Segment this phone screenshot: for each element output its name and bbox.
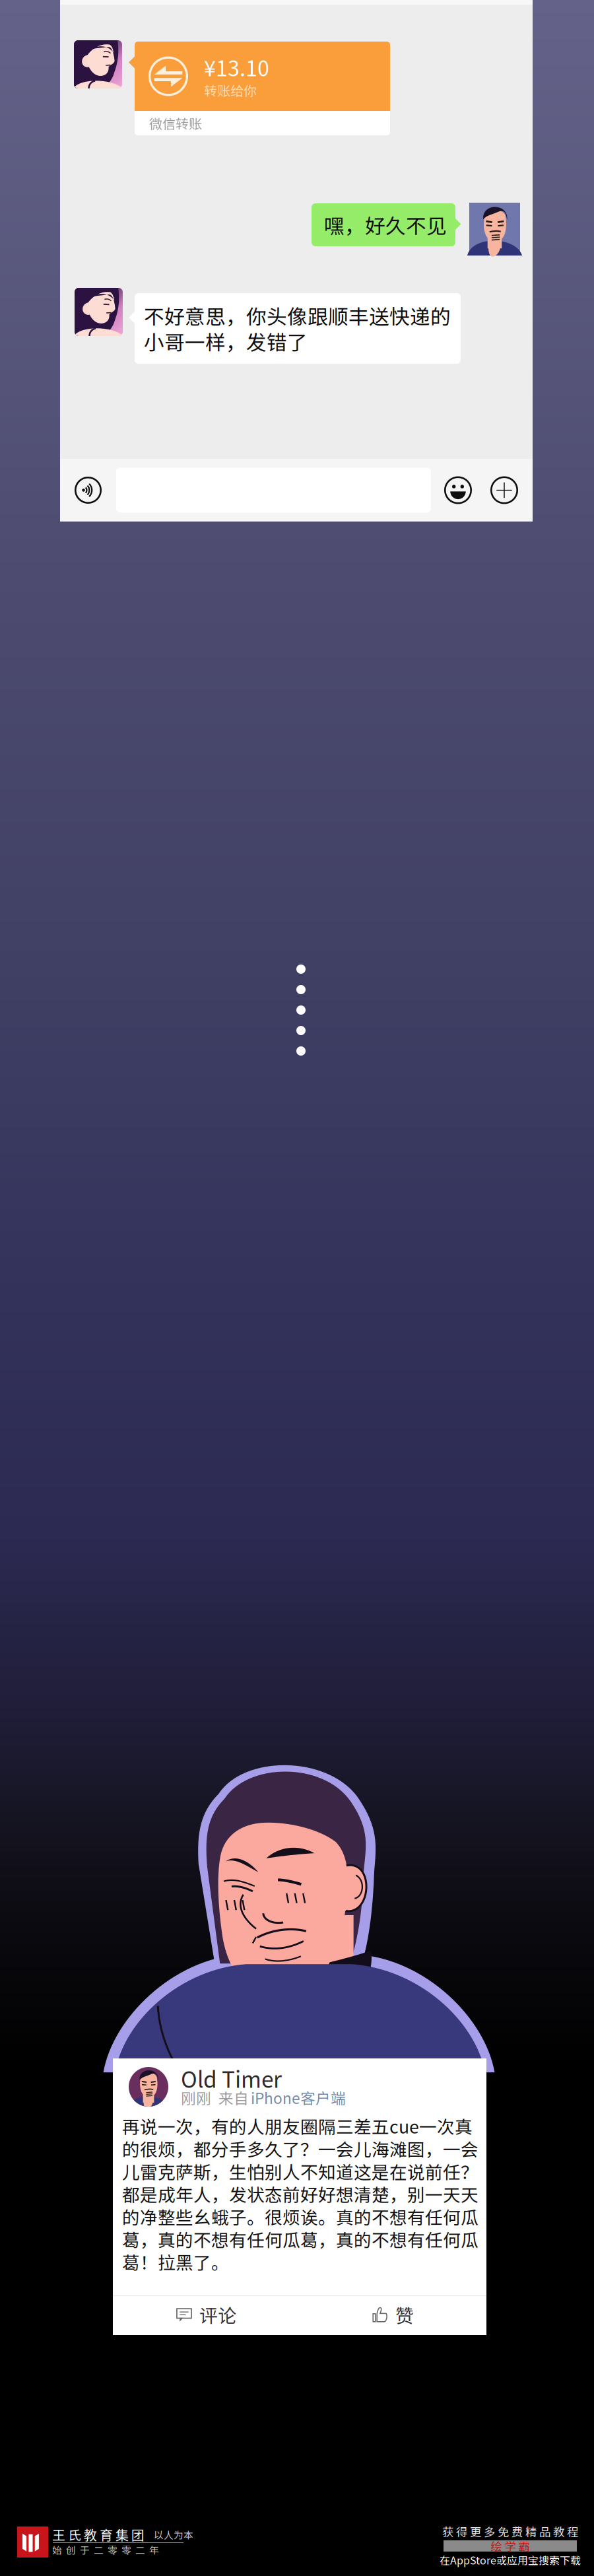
staticText: ¥13.10 — [204, 52, 269, 82]
staticText: 以人为本 — [154, 2527, 193, 2541]
staticText: 转账给你 — [204, 81, 257, 100]
button[interactable]: 嘿，好久不见 — [312, 203, 461, 246]
staticText: 始 创 于 二 零 零 二 年 — [52, 2543, 159, 2557]
staticText: Old Timer — [181, 2062, 282, 2094]
staticText: 嘿，好久不见 — [324, 210, 447, 239]
button[interactable]: More — [490, 476, 518, 504]
button[interactable]: ¥13.10 — [129, 42, 390, 135]
staticText: 刚刚 — [181, 2087, 211, 2108]
staticText: 在AppStore或应用宝搜索下载 — [440, 2552, 581, 2568]
staticText: 葛，真的不想有任何瓜葛，真的不想有任何瓜 — [122, 2226, 478, 2252]
staticText: 小哥一样，发错了 — [144, 327, 308, 356]
button[interactable]: 评论 — [113, 2296, 300, 2333]
staticText: 葛！拉黑了。 — [122, 2249, 229, 2274]
staticText: 的很烦，都分手多久了？一会儿海滩图，一会 — [122, 2136, 478, 2161]
button[interactable]: 不好意思，你头像跟顺丰送快递的 — [129, 293, 461, 364]
staticText: 赞 — [395, 2301, 414, 2328]
button[interactable]: Emoji — [444, 476, 472, 504]
staticText: 绘 学 霸 — [491, 2538, 530, 2554]
staticText: 微信转账 — [149, 114, 202, 133]
button[interactable]: 赞 — [300, 2296, 486, 2333]
staticText: 的净整些幺蛾子。很烦诶。真的不想有任何瓜 — [122, 2204, 478, 2229]
staticText: 获 得 更 多 免 费 精 品 教 程 — [442, 2523, 578, 2540]
staticText: 不好意思，你头像跟顺丰送快递的 — [144, 301, 451, 330]
button[interactable]: Voice message — [75, 477, 102, 504]
staticText: 评论 — [199, 2301, 236, 2328]
staticText: iPhone客户端 — [251, 2087, 346, 2108]
staticText: 来自 — [218, 2087, 249, 2108]
staticText: 都是成年人，发状态前好好想清楚，别一天天 — [122, 2181, 478, 2207]
staticText: 王 氏 教 育 集 团 — [52, 2525, 145, 2544]
staticText: 再说一次，有的人朋友圈隔三差五cue一次真 — [122, 2113, 473, 2139]
staticText: 儿雷克萨斯，生怕别人不知道这是在说前任？ — [122, 2158, 478, 2184]
